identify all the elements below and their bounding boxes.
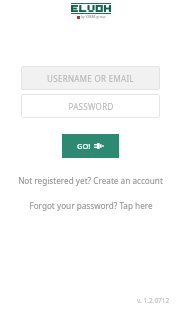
- button[interactable]: GO!: [62, 134, 119, 158]
- staticText: GO!: [77, 141, 91, 151]
- staticText: Not registered yet? Create an account: [18, 175, 163, 186]
- button[interactable]: PASSWORD: [21, 94, 160, 118]
- other: Connect: [94, 142, 104, 150]
- staticText: by VIMAR group: [81, 15, 106, 19]
- staticText: PASSWORD: [68, 101, 114, 112]
- button[interactable]: Forgot your password? Tap here: [0, 199, 181, 212]
- button[interactable]: Not registered yet? Create an account: [0, 174, 181, 187]
- staticText: v. 1.2.0712: [137, 296, 170, 305]
- staticText: USERNAME OR EMAIL: [47, 73, 134, 84]
- button[interactable]: USERNAME OR EMAIL: [21, 66, 160, 90]
- staticText: Forgot your password? Tap here: [29, 200, 153, 211]
